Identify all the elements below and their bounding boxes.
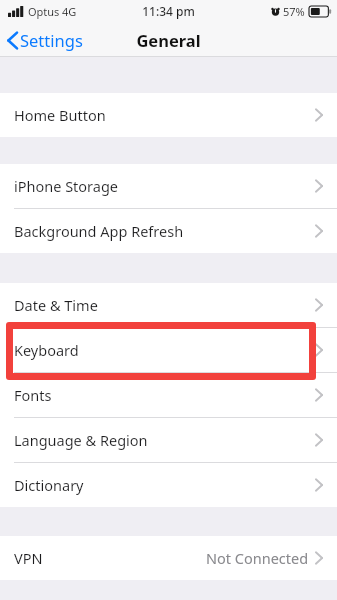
other: Open Language & Region bbox=[315, 433, 323, 447]
button[interactable]: Dictionary bbox=[0, 463, 337, 507]
other: Open Keyboard bbox=[315, 343, 323, 357]
staticText: 11:34 pm bbox=[142, 3, 195, 19]
button[interactable]: VPN bbox=[0, 536, 337, 580]
staticText: VPN bbox=[14, 548, 43, 568]
staticText: Background App Refresh bbox=[14, 221, 184, 241]
staticText: Dictionary bbox=[14, 475, 84, 495]
staticText: 4G bbox=[62, 4, 77, 19]
other: Open Dictionary bbox=[315, 478, 323, 492]
other: Open Home Button bbox=[315, 108, 323, 122]
button[interactable]: Fonts bbox=[0, 373, 337, 417]
staticText: Fonts bbox=[14, 385, 52, 405]
button[interactable]: Home Button bbox=[0, 93, 337, 137]
button[interactable]: Background App Refresh bbox=[0, 209, 337, 253]
other: Open VPN bbox=[315, 551, 323, 565]
other: Open Date & Time bbox=[315, 298, 323, 312]
other: Open iPhone Storage bbox=[315, 179, 323, 193]
staticText: Optus bbox=[28, 4, 60, 19]
staticText: Home Button bbox=[14, 105, 106, 125]
other: Open Background App Refresh bbox=[315, 224, 323, 238]
button[interactable]: iPhone Storage bbox=[0, 164, 337, 208]
button[interactable]: Language & Region bbox=[0, 418, 337, 462]
staticText: Settings bbox=[20, 29, 83, 51]
button[interactable]: Date & Time bbox=[0, 283, 337, 327]
staticText: General bbox=[136, 29, 201, 51]
other: Open Fonts bbox=[315, 388, 323, 402]
button[interactable]: Keyboard bbox=[0, 328, 337, 372]
staticText: 57% bbox=[283, 4, 305, 19]
staticText: iPhone Storage bbox=[14, 176, 119, 196]
button[interactable]: Settings bbox=[0, 25, 93, 55]
staticText: Date & Time bbox=[14, 295, 98, 315]
staticText: Not Connected bbox=[206, 548, 309, 568]
staticText: Language & Region bbox=[14, 430, 148, 450]
staticText: Keyboard bbox=[14, 340, 79, 360]
